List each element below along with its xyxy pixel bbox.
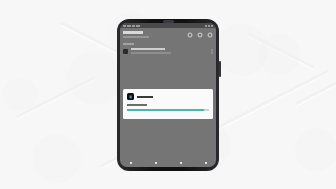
button[interactable]: Settings — [201, 158, 210, 167]
button[interactable]: More options — [206, 31, 213, 38]
button[interactable]: Search — [186, 31, 193, 38]
button[interactable]: Sort — [196, 31, 203, 38]
button[interactable] — [123, 48, 213, 54]
button[interactable]: Downloads — [176, 158, 185, 167]
button[interactable]: Files — [151, 158, 160, 167]
button[interactable]: Home — [126, 158, 135, 167]
button[interactable] — [123, 89, 213, 119]
